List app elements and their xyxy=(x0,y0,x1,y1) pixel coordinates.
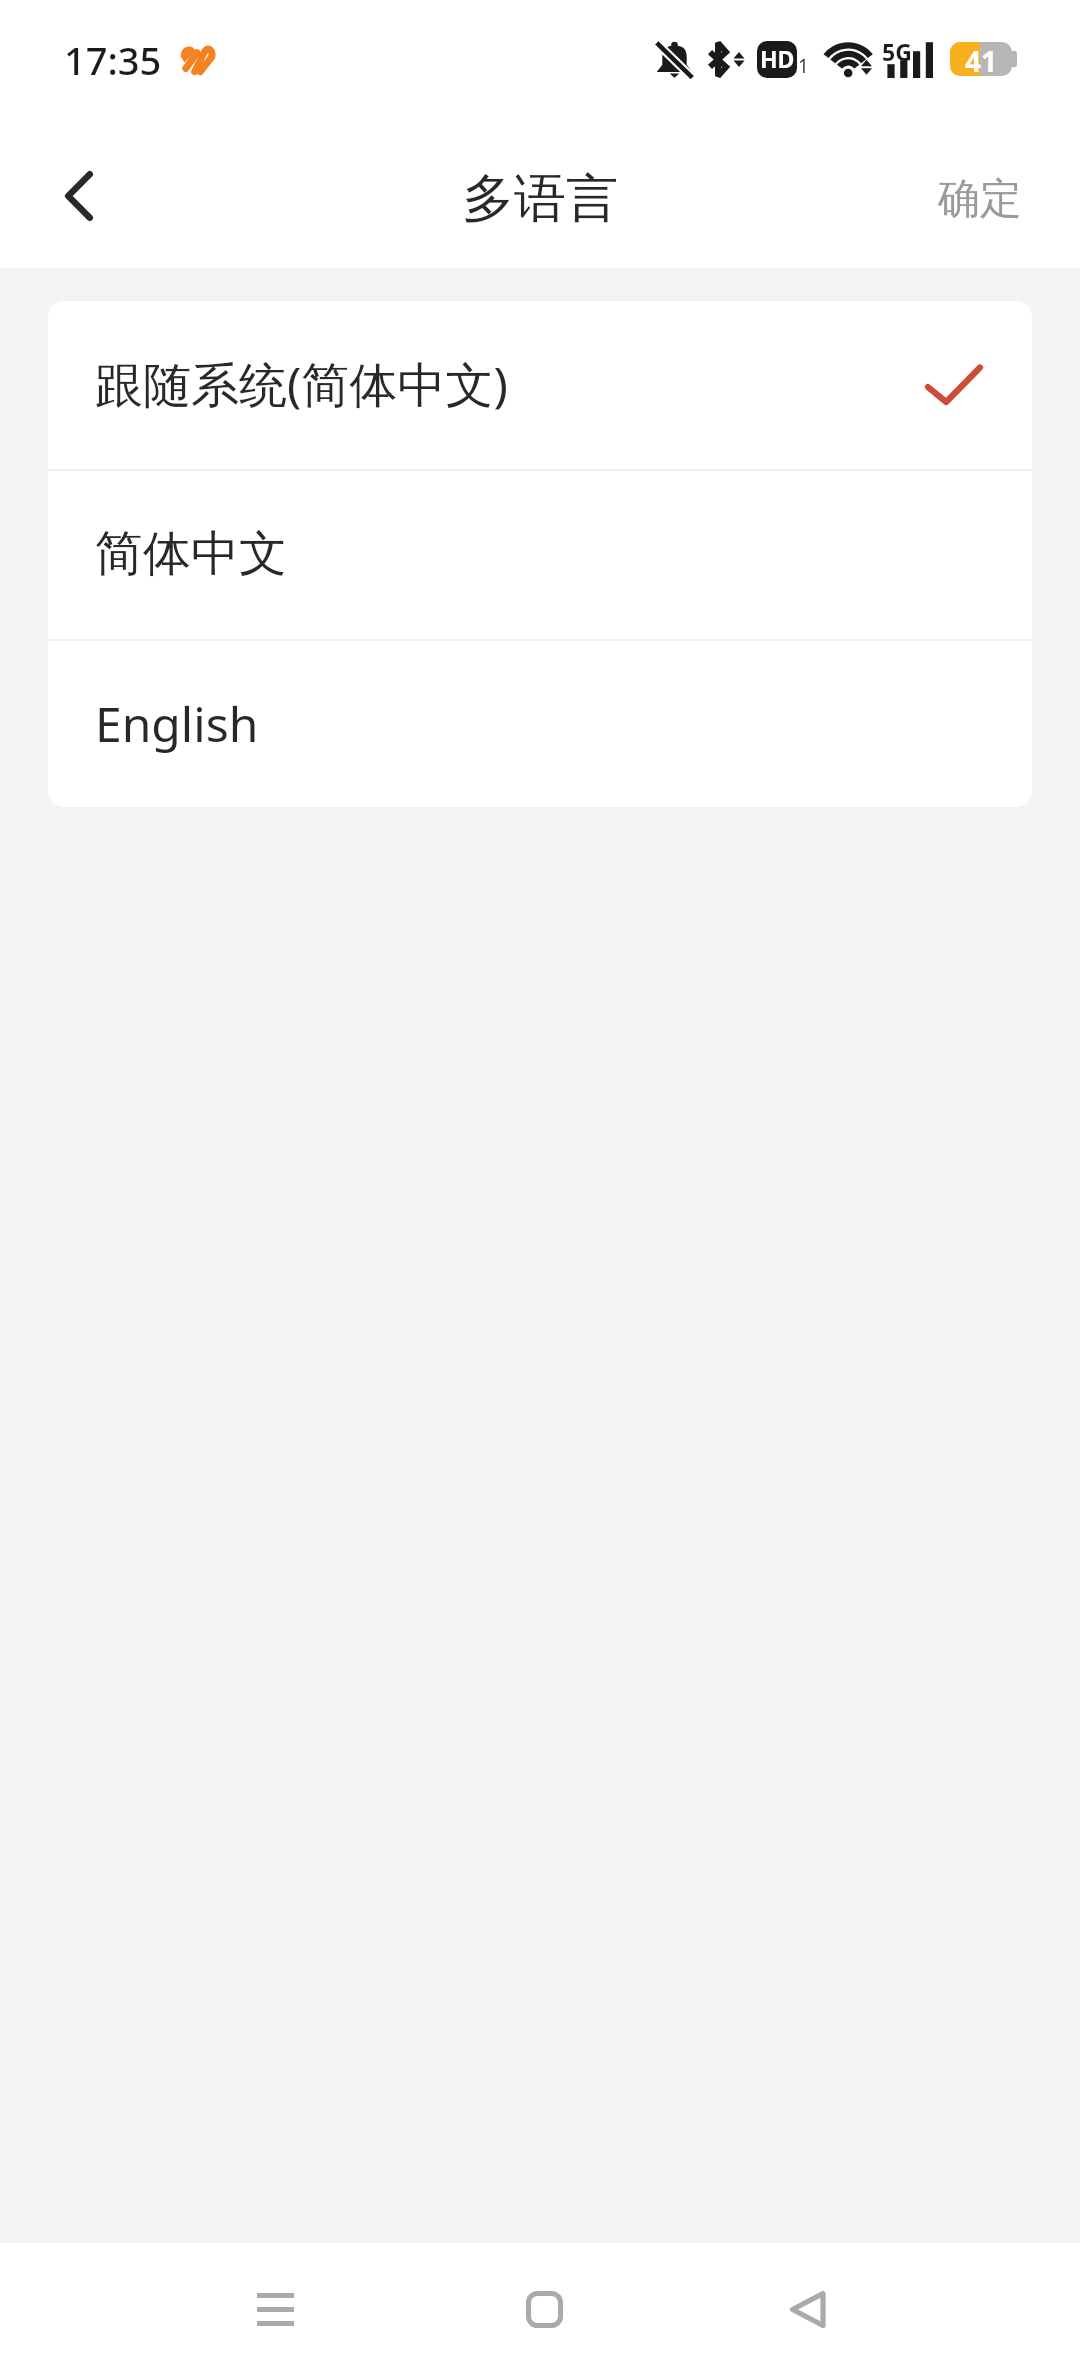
button[interactable]: 确定 xyxy=(880,130,1080,268)
staticText: English xyxy=(95,691,259,756)
staticText: HD xyxy=(760,43,795,74)
staticText: 多语言 xyxy=(462,166,618,232)
staticText: 简体中文 xyxy=(95,524,287,584)
button[interactable]: English xyxy=(48,641,1032,807)
staticText: 5G xyxy=(882,36,912,67)
button[interactable]: Back xyxy=(727,2243,888,2376)
staticText: 41 xyxy=(965,42,998,76)
staticText: 1 xyxy=(798,53,809,79)
button[interactable]: 跟随系统(简体中文) xyxy=(48,301,1032,469)
button[interactable]: 简体中文 xyxy=(48,471,1032,639)
button[interactable]: Recent apps xyxy=(195,2243,356,2376)
staticText: 确定 xyxy=(938,173,1022,226)
staticText: 跟随系统(简体中文) xyxy=(95,351,508,417)
button[interactable]: Home xyxy=(464,2243,625,2376)
staticText: 17:35 xyxy=(64,34,162,86)
button[interactable]: Back xyxy=(0,130,158,268)
